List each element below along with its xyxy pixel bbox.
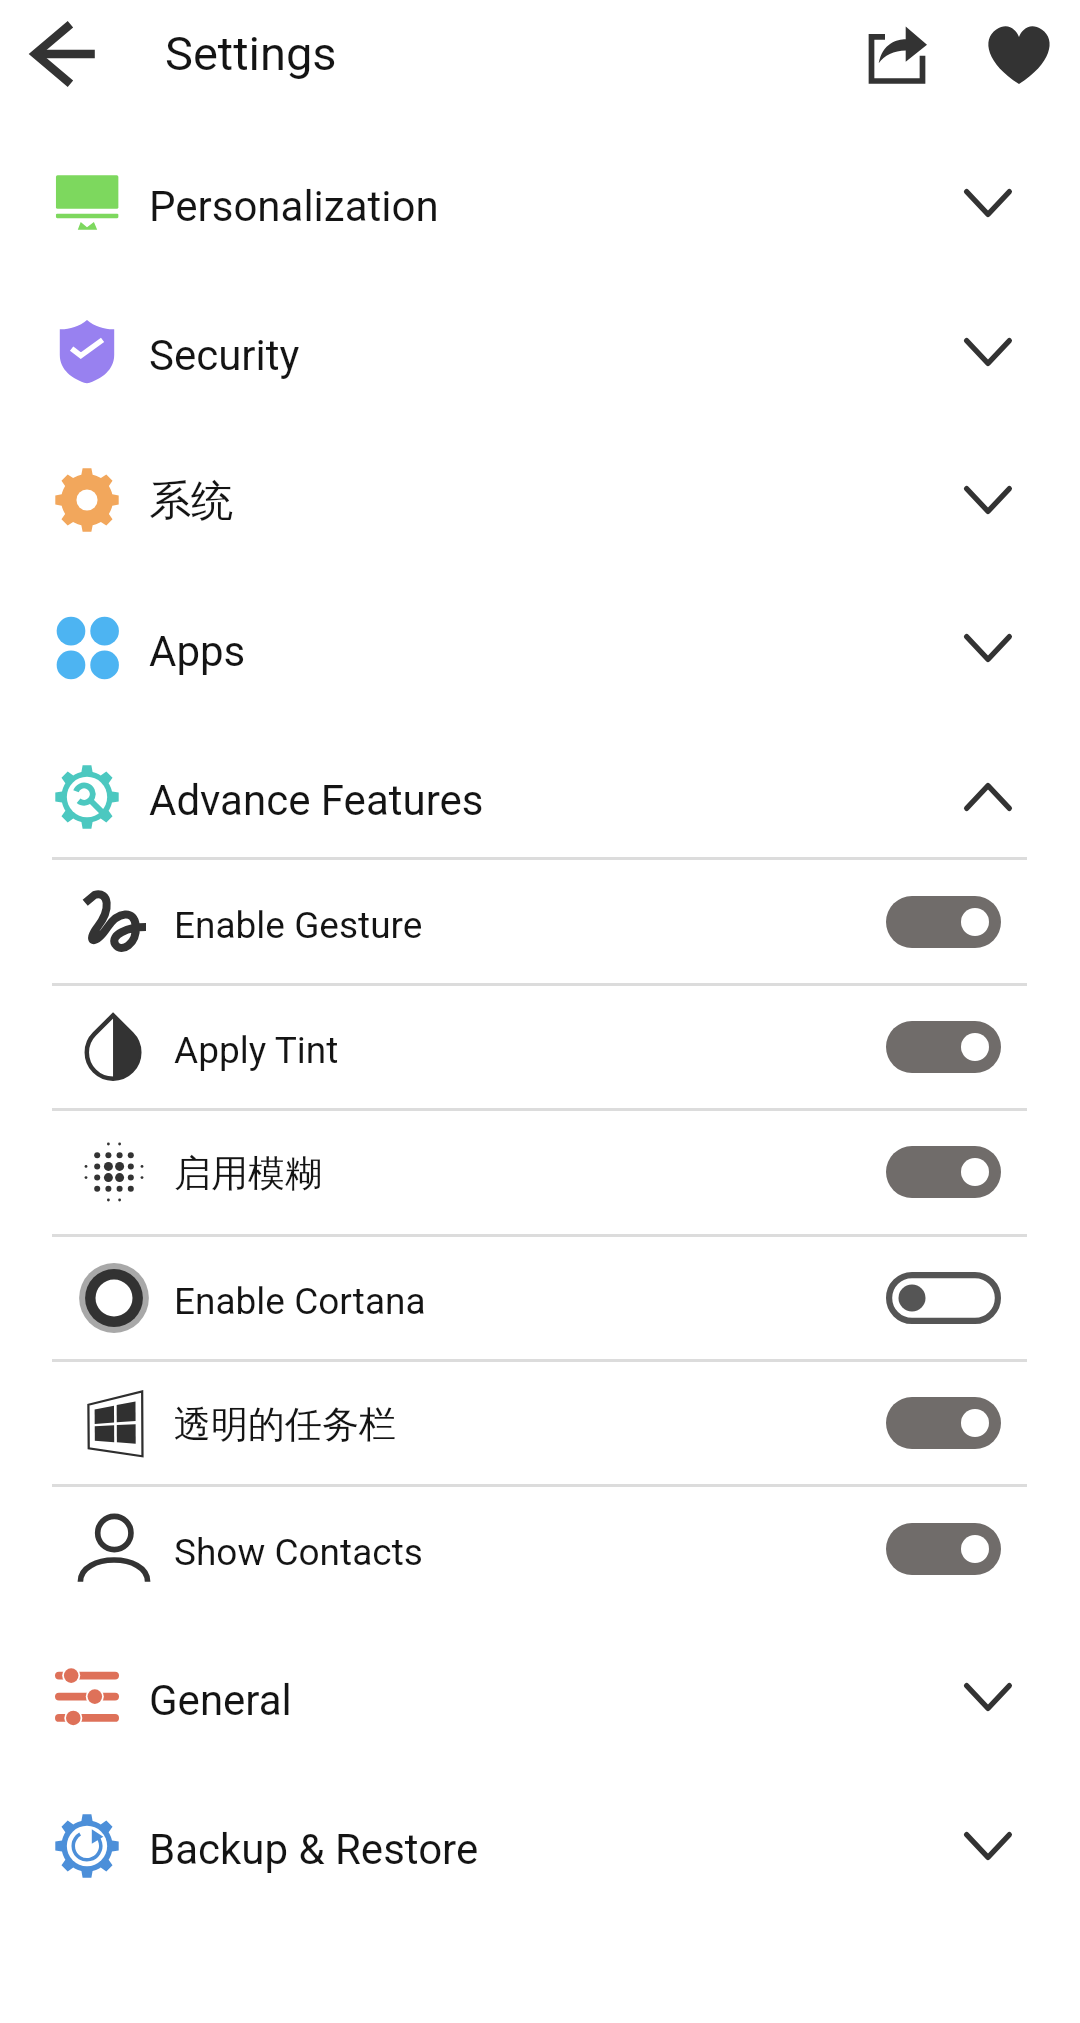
button[interactable]: Show Contacts xyxy=(0,1486,1080,1611)
button[interactable]: Enable Gesture xyxy=(0,859,1080,984)
button[interactable]: Enable Cortana xyxy=(0,1235,1080,1360)
button[interactable]: 启用模糊 xyxy=(0,1109,1080,1234)
button[interactable]: Favorite xyxy=(975,10,1063,98)
staticText: Settings xyxy=(165,26,337,82)
button[interactable]: Switch on xyxy=(886,1523,1001,1575)
staticText: Enable Cortana xyxy=(174,1279,426,1323)
button[interactable]: Personalization xyxy=(0,129,1080,277)
staticText: Security xyxy=(149,330,300,380)
button[interactable]: Backup & Restore xyxy=(0,1772,1080,1920)
button[interactable]: 透明的任务栏 xyxy=(0,1360,1080,1485)
staticText: Advance Features xyxy=(149,775,484,825)
button[interactable]: Switch on xyxy=(886,896,1001,948)
button[interactable]: Security xyxy=(0,278,1080,426)
button[interactable]: Switch off xyxy=(886,1272,1001,1324)
button[interactable]: Switch on xyxy=(886,1146,1001,1198)
staticText: General xyxy=(149,1675,292,1725)
button[interactable]: Apply Tint xyxy=(0,984,1080,1109)
staticText: Apply Tint xyxy=(174,1028,339,1072)
staticText: Personalization xyxy=(149,181,439,231)
button[interactable]: General xyxy=(0,1623,1080,1771)
button[interactable]: Switch on xyxy=(886,1397,1001,1449)
staticText: Backup & Restore xyxy=(149,1824,479,1874)
staticText: Enable Gesture xyxy=(174,903,423,947)
button[interactable]: Share xyxy=(853,10,941,98)
staticText: 透明的任务栏 xyxy=(174,1404,396,1448)
button[interactable]: Apps xyxy=(0,574,1080,722)
staticText: Show Contacts xyxy=(174,1530,423,1574)
button[interactable]: Switch on xyxy=(886,1021,1001,1073)
staticText: 启用模糊 xyxy=(174,1153,322,1197)
button[interactable]: Back xyxy=(21,10,109,98)
button[interactable]: Advance Features xyxy=(0,723,1080,871)
staticText: Apps xyxy=(149,626,246,676)
button[interactable]: 系统 xyxy=(0,426,1080,574)
staticText: 系统 xyxy=(149,478,233,528)
